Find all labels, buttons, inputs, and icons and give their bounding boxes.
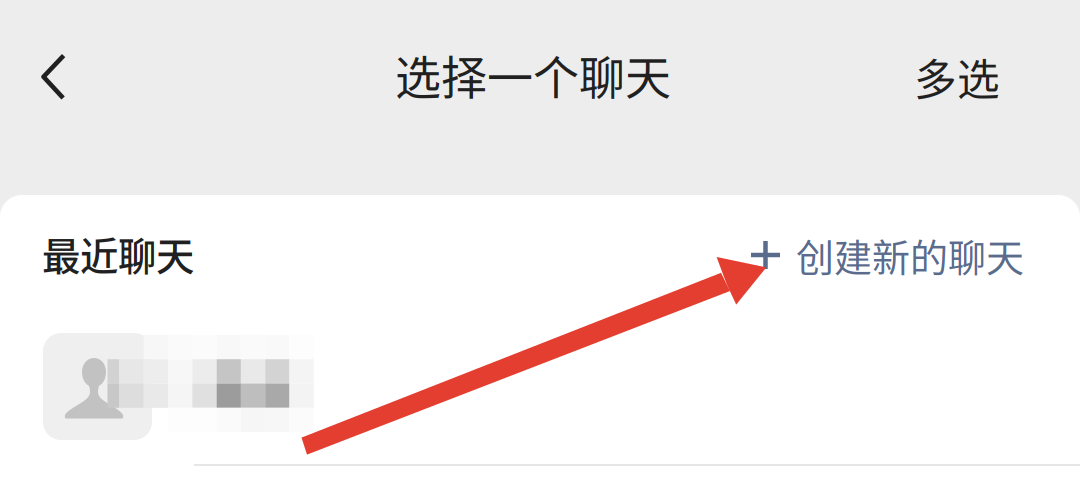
button[interactable]: 多选 <box>897 32 1017 122</box>
staticText: 多选 <box>914 46 1000 108</box>
staticText: 选择一个聊天 <box>395 41 671 108</box>
staticText: 最近聊天 <box>42 226 194 282</box>
staticText: 创建新的聊天 <box>796 227 1024 282</box>
button[interactable]: 返回 <box>24 18 120 138</box>
button[interactable]: 创建新的聊天 <box>751 225 1024 285</box>
